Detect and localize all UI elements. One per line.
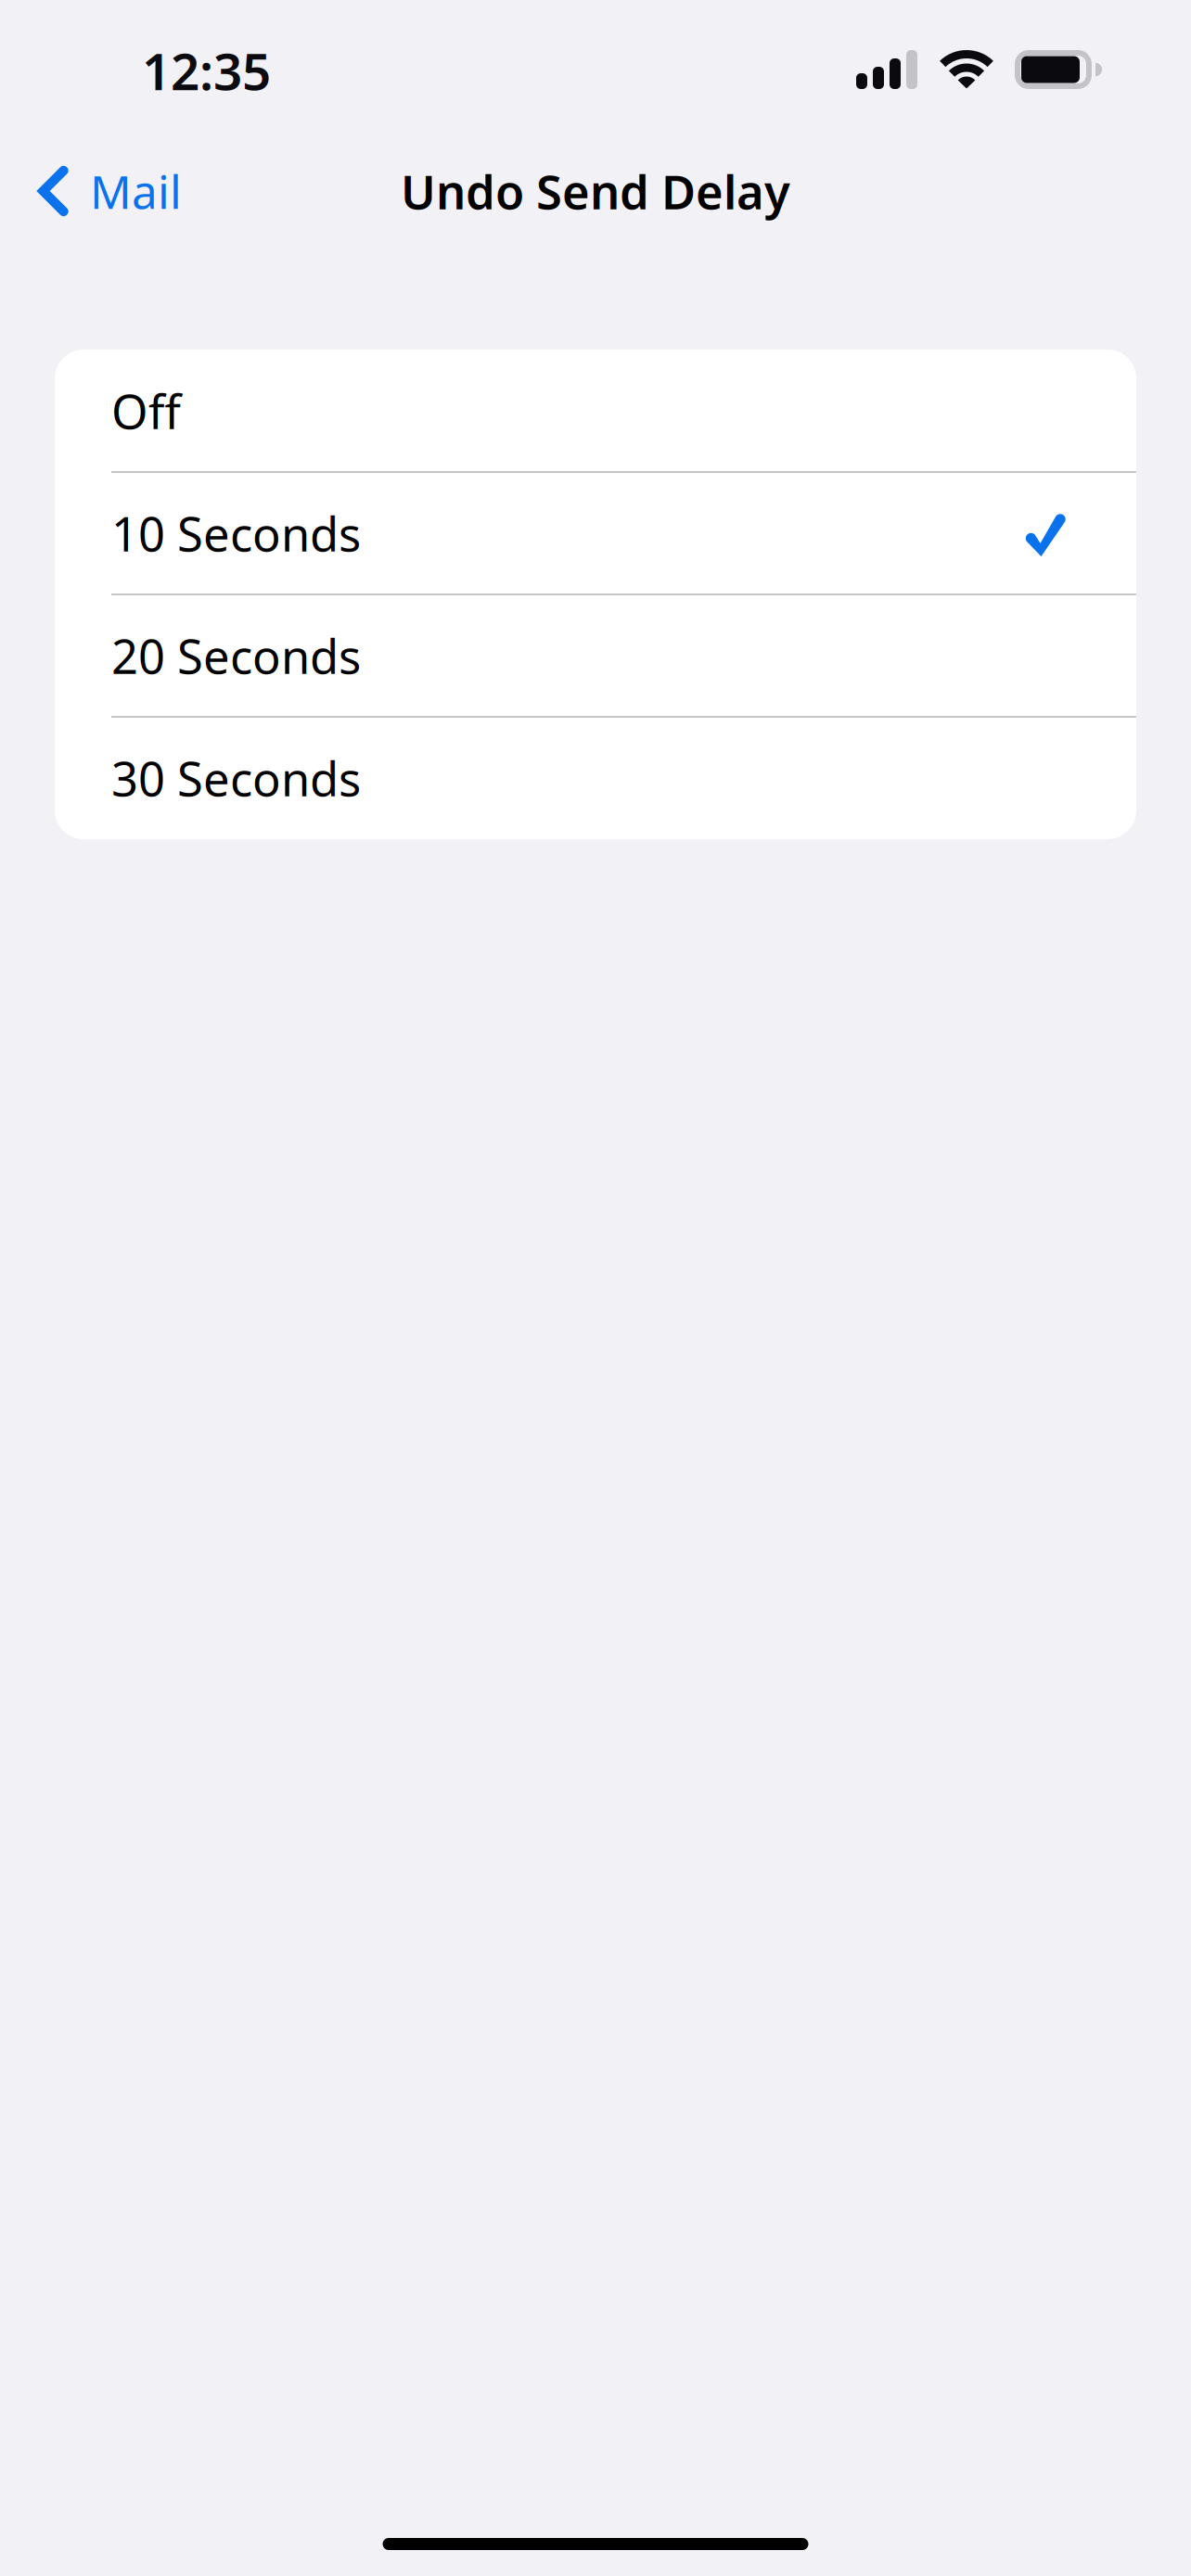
button[interactable]: Off [55,350,1136,472]
button[interactable]: Mail [0,140,297,242]
staticText: Undo Send Delay [401,160,790,222]
button[interactable]: 20 Seconds [55,594,1136,717]
button[interactable]: 10 Seconds [55,472,1136,594]
button[interactable]: 30 Seconds [55,717,1136,839]
staticText: 30 Seconds [111,747,361,809]
staticText: Mail [90,161,182,221]
staticText: Off [111,380,181,442]
staticText: 10 Seconds [111,502,361,564]
staticText: 20 Seconds [111,624,361,687]
staticText: 12:35 [142,37,271,104]
